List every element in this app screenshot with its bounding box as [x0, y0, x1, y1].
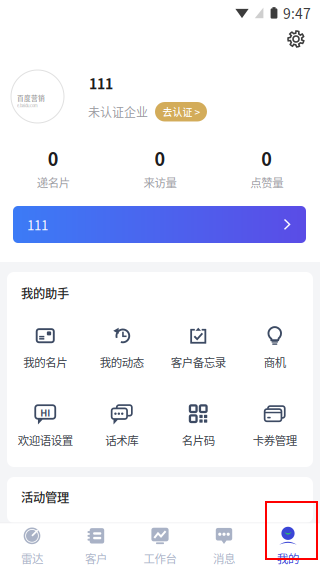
staticText: 名片码 — [182, 432, 215, 448]
button[interactable]: 商机 — [236, 323, 313, 373]
staticText: 0 — [154, 145, 165, 171]
staticText: 消息 — [213, 550, 235, 566]
button[interactable]: 话术库 — [83, 401, 160, 451]
button[interactable]: 工作台 — [128, 523, 192, 569]
staticText: 去认证 > — [162, 105, 200, 119]
button[interactable]: 我的名片 — [7, 323, 83, 373]
staticText: 客户 — [85, 550, 107, 566]
button[interactable]: 111 — [13, 206, 306, 243]
button[interactable]: 我的动态 — [83, 323, 160, 373]
staticText: 雷达 — [21, 550, 43, 566]
staticText: 商机 — [264, 354, 286, 370]
staticText: 活动管理 — [21, 488, 69, 506]
button[interactable]: 我的 — [256, 523, 320, 569]
button[interactable]: 设置 — [283, 26, 309, 52]
button[interactable]: 名片码 — [160, 401, 236, 451]
button[interactable]: HI — [7, 401, 83, 451]
staticText: 卡券管理 — [253, 432, 297, 448]
button[interactable]: 去认证 > — [155, 102, 207, 121]
staticText: 我的 — [277, 550, 299, 566]
staticText: 来访量 — [143, 174, 176, 191]
staticText: 0 — [48, 145, 59, 171]
staticText: 未认证企业 — [88, 103, 148, 120]
button[interactable]: 客户备忘录 — [160, 323, 236, 373]
staticText: 9:47 — [283, 3, 311, 23]
staticText: 111 — [89, 73, 113, 93]
staticText: 递名片 — [37, 174, 70, 191]
button[interactable]: 雷达 — [0, 523, 64, 569]
staticText: 客户备忘录 — [171, 354, 226, 370]
staticText: 我的名片 — [23, 354, 67, 370]
staticText: 111 — [27, 215, 48, 234]
staticText: 我的助手 — [21, 284, 69, 302]
staticText: 欢迎语设置 — [18, 432, 73, 448]
staticText: 话术库 — [105, 432, 138, 448]
staticText: HI — [40, 406, 50, 419]
staticText: 百度营销 — [17, 93, 45, 103]
button[interactable]: 客户 — [64, 523, 128, 569]
staticText: 工作台 — [143, 550, 176, 566]
button[interactable]: 消息 — [192, 523, 256, 569]
staticText: e.baidu.com — [17, 103, 38, 108]
button[interactable]: 卡券管理 — [236, 401, 313, 451]
staticText: 0 — [261, 145, 272, 171]
staticText: 点赞量 — [250, 174, 283, 191]
staticText: 我的动态 — [100, 354, 144, 370]
